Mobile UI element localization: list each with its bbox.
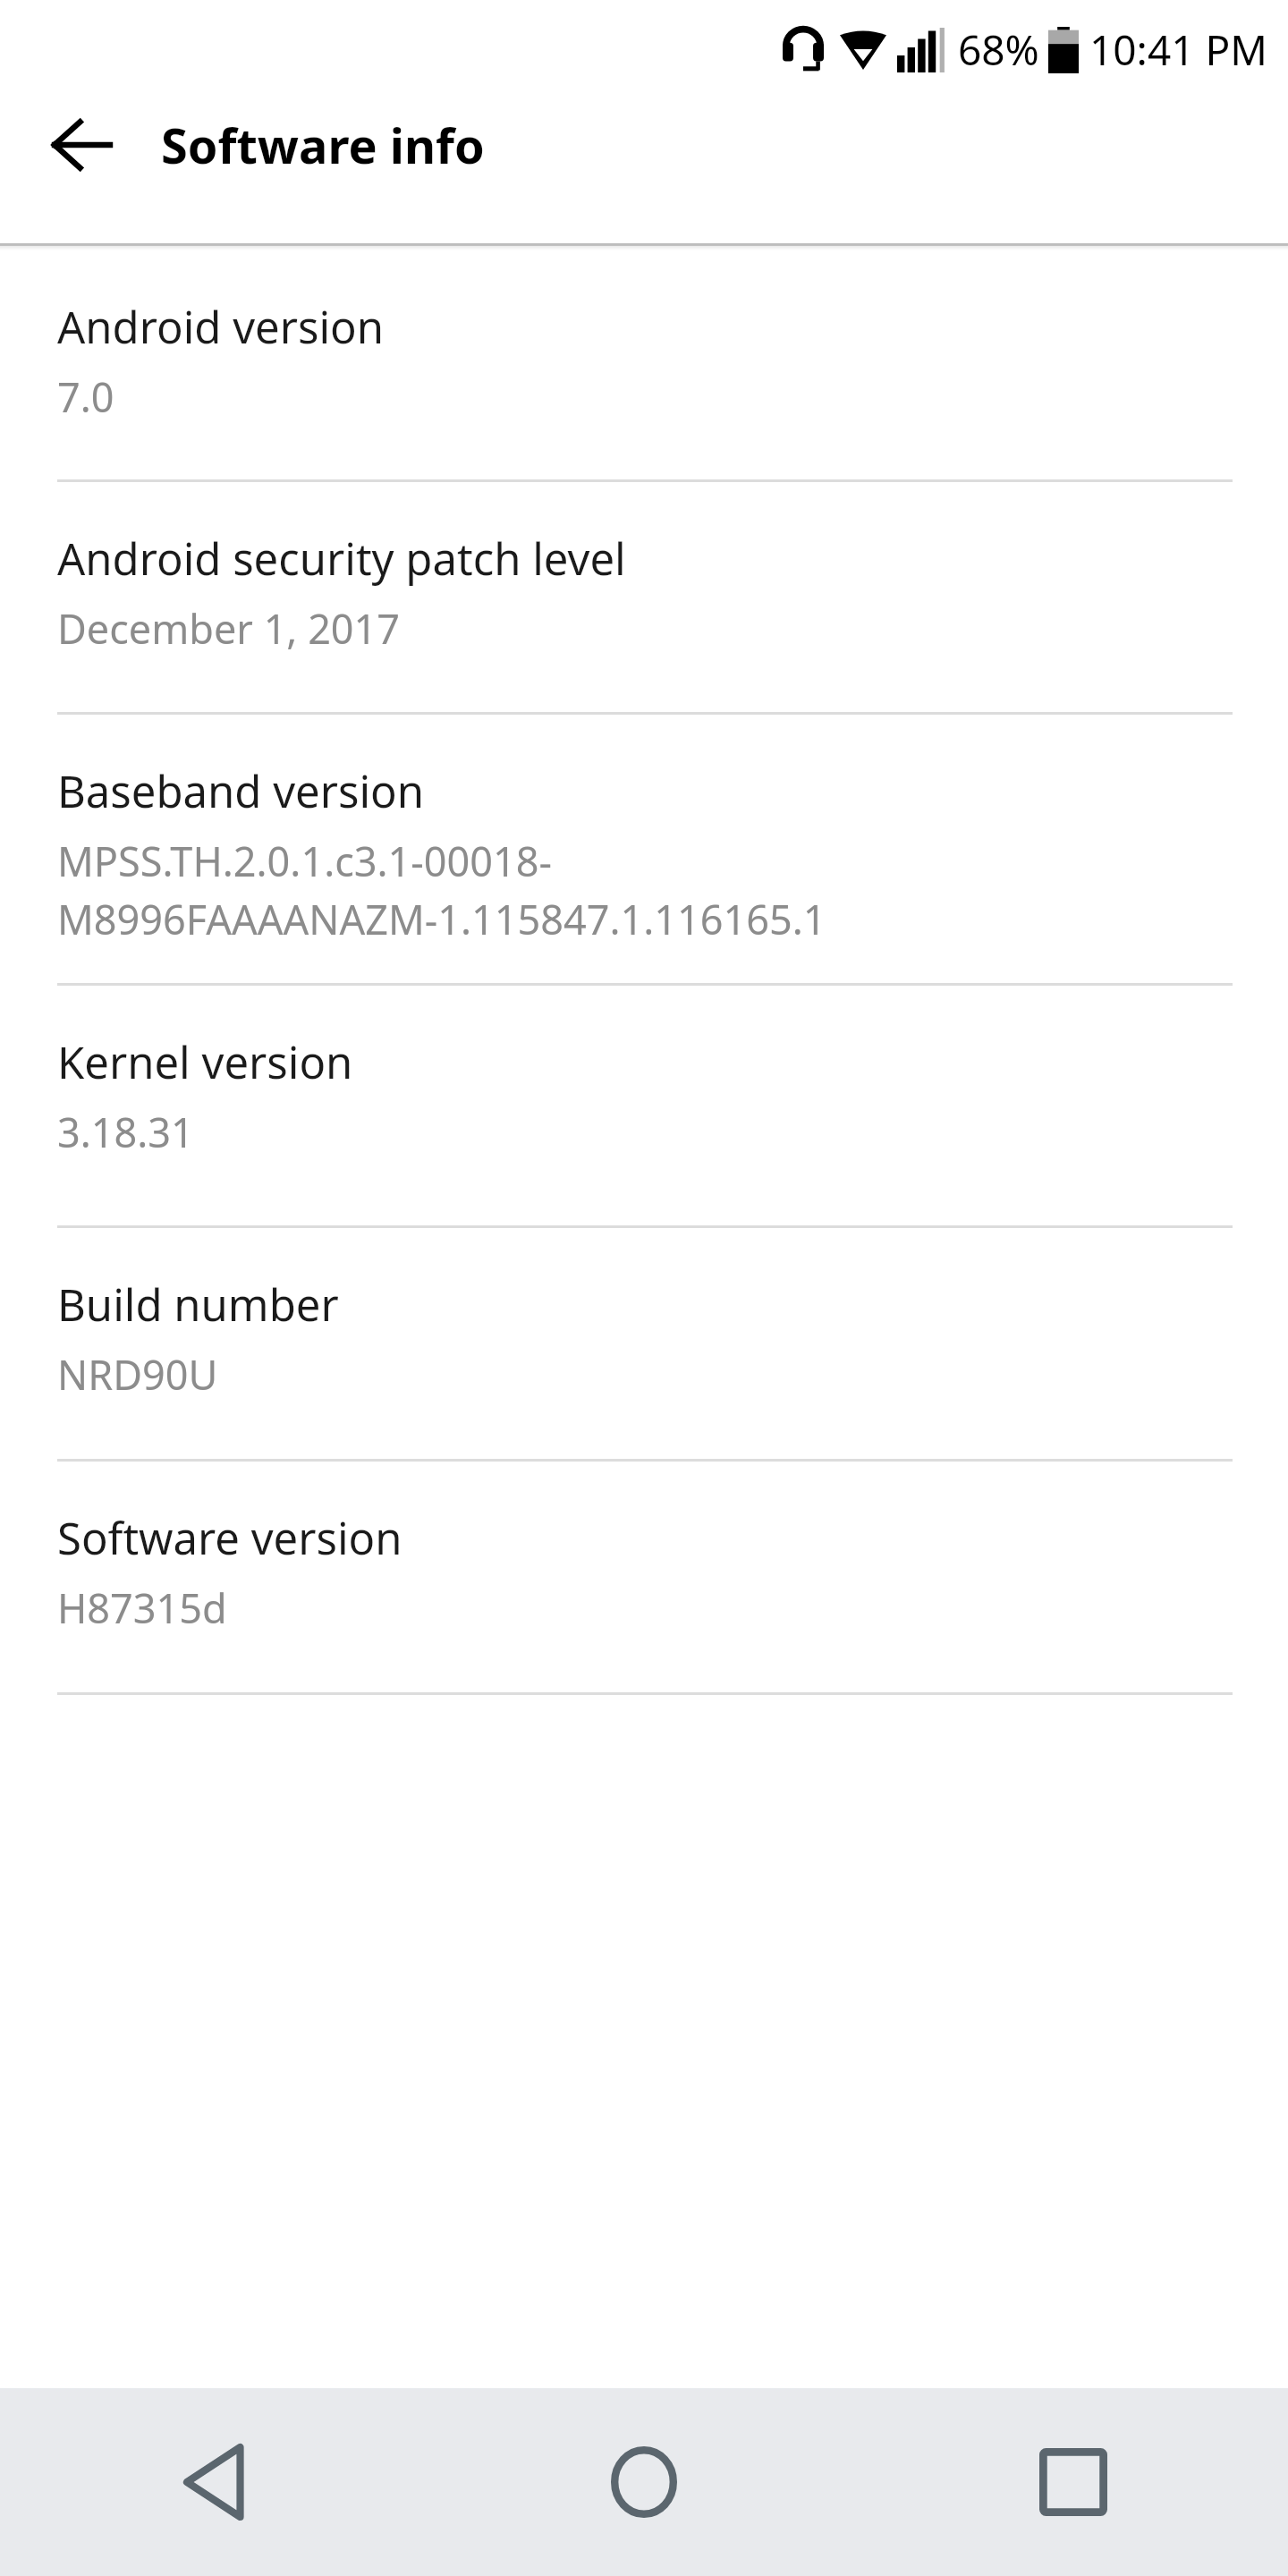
button[interactable]: Android version — [0, 250, 1288, 482]
staticText: Build number — [57, 1275, 339, 1335]
staticText: Baseband version — [57, 761, 425, 821]
staticText: Android security patch level — [57, 529, 626, 589]
button[interactable]: Build number — [0, 1228, 1288, 1462]
button[interactable]: Home — [429, 2388, 859, 2576]
staticText: Software info — [161, 112, 485, 178]
staticText: Android version — [57, 297, 384, 357]
staticText: M8996FAAAANAZM-1.115847.1.116165.1 — [57, 892, 826, 946]
button[interactable]: Recent apps — [859, 2388, 1288, 2576]
staticText: December 1, 2017 — [57, 601, 401, 656]
staticText: Software version — [57, 1508, 402, 1568]
button[interactable]: Android security patch level — [0, 482, 1288, 715]
button[interactable]: Software version — [0, 1462, 1288, 1695]
staticText: Kernel version — [57, 1032, 353, 1092]
staticText: H87315d — [57, 1580, 227, 1635]
button[interactable]: Back — [0, 2388, 429, 2576]
staticText: 7.0 — [57, 369, 114, 424]
button[interactable]: Back — [36, 98, 129, 191]
button[interactable]: Baseband version — [0, 715, 1288, 986]
staticText: NRD90U — [57, 1347, 218, 1402]
staticText: 3.18.31 — [57, 1105, 194, 1159]
staticText: 10:41 PM — [1089, 21, 1268, 78]
staticText: MPSS.TH.2.0.1.c3.1-00018- — [57, 834, 553, 888]
staticText: 68% — [958, 21, 1039, 78]
button[interactable]: Kernel version — [0, 986, 1288, 1228]
